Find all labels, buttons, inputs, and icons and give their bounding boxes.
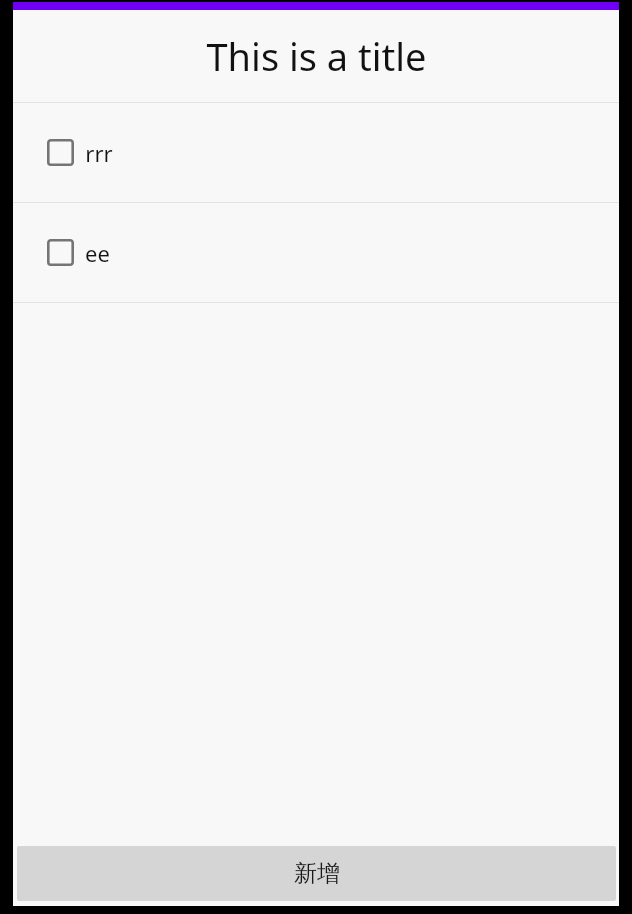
staticText: ee — [85, 238, 110, 268]
other: Checkbox, unchecked — [47, 239, 74, 266]
other: Checkbox, unchecked — [47, 139, 74, 166]
staticText: 新增 — [294, 859, 340, 888]
staticText: rrr — [85, 138, 113, 168]
button[interactable]: Checkbox, unchecked — [13, 103, 619, 202]
button[interactable]: Checkbox, unchecked — [13, 203, 619, 302]
button[interactable]: 新增 — [17, 846, 616, 901]
staticText: This is a title — [206, 30, 427, 82]
